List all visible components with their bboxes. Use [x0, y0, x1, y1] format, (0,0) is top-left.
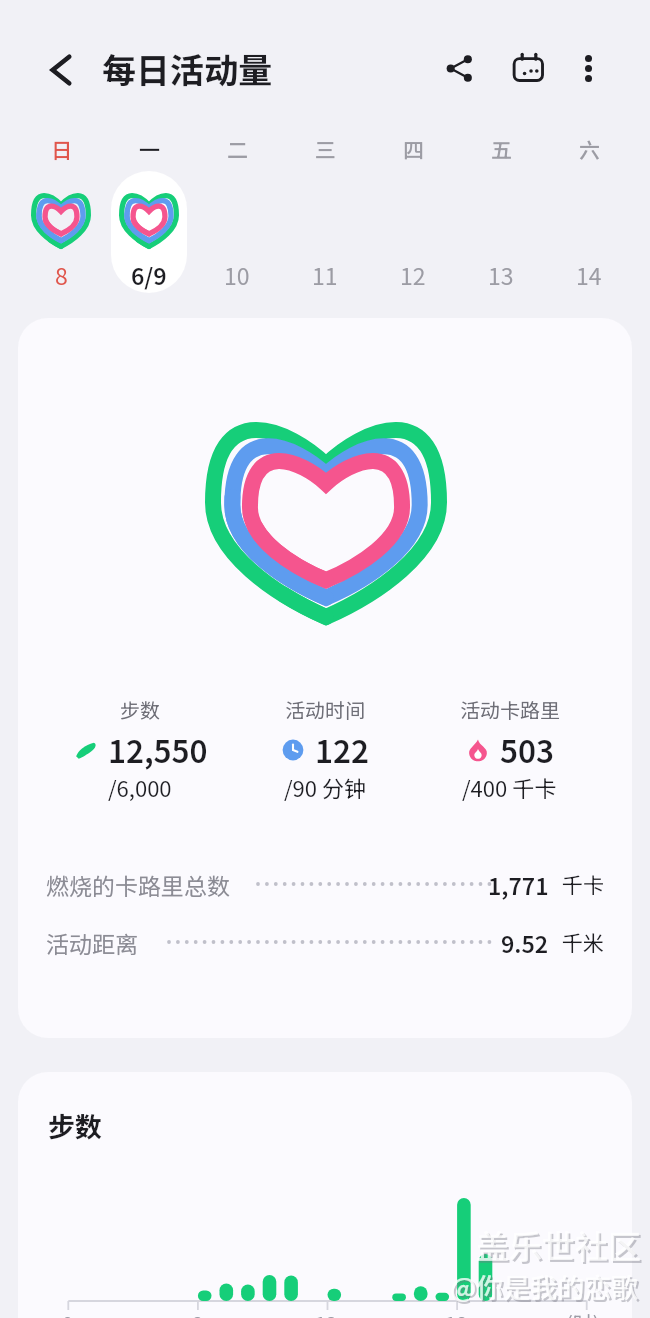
button[interactable]: 步数	[18, 1072, 632, 1318]
button[interactable]: 活动卡路里	[417, 684, 602, 794]
button[interactable]: 燃烧的卡路里总数	[18, 864, 632, 904]
staticText: 千米	[562, 927, 604, 957]
staticText: @你是我的恋歌	[450, 1267, 639, 1306]
button[interactable]: 活动时间	[232, 684, 417, 794]
button[interactable]	[287, 171, 363, 293]
button[interactable]: Calendar	[500, 40, 557, 97]
button[interactable]: More options	[560, 40, 617, 97]
staticText: 122	[315, 727, 369, 772]
staticText: 13	[488, 258, 514, 291]
button[interactable]	[111, 171, 187, 293]
button[interactable]: 步数	[18, 318, 632, 1038]
staticText: 活动时间	[285, 695, 365, 724]
button[interactable]: 活动距离	[18, 922, 632, 962]
staticText: 12	[400, 258, 426, 291]
button[interactable]: Share	[430, 40, 487, 97]
staticText: /400 千卡	[462, 771, 557, 803]
staticText: (时)	[566, 1308, 600, 1318]
button[interactable]	[375, 171, 451, 293]
staticText: /6,000	[108, 771, 172, 803]
staticText: 盖乐世社区	[478, 1223, 643, 1271]
staticText: 14	[576, 258, 602, 291]
staticText: @你是我的恋歌	[452, 1269, 641, 1308]
button[interactable]: Back	[31, 41, 89, 99]
staticText: 四	[403, 134, 424, 164]
staticText: 二	[227, 134, 248, 164]
staticText: 六	[579, 134, 600, 164]
staticText: 盖乐世社区	[476, 1221, 641, 1269]
button[interactable]	[23, 171, 99, 293]
staticText: 五	[491, 134, 512, 164]
staticText: 503	[500, 727, 554, 772]
staticText: 10	[224, 258, 250, 291]
staticText: 活动距离	[46, 926, 138, 959]
button[interactable]	[463, 171, 539, 293]
staticText: 三	[315, 134, 336, 164]
staticText: 6	[191, 1308, 203, 1318]
staticText: 步数	[48, 1106, 102, 1145]
staticText: 18	[445, 1308, 468, 1318]
staticText: 日	[51, 134, 72, 164]
staticText: /90 分钟	[284, 771, 366, 803]
staticText: 每日活动量	[102, 44, 272, 93]
button[interactable]: 步数	[48, 684, 232, 794]
staticText: 活动卡路里	[460, 695, 560, 724]
staticText: 步数	[120, 695, 160, 724]
button[interactable]	[199, 171, 275, 293]
staticText: 11	[312, 258, 338, 291]
staticText: 12,550	[108, 727, 208, 772]
button[interactable]	[551, 171, 627, 293]
staticText: 燃烧的卡路里总数	[46, 868, 230, 901]
staticText: 0	[62, 1308, 74, 1318]
staticText: 12	[315, 1308, 338, 1318]
staticText: 一	[139, 134, 160, 164]
staticText: 8	[55, 258, 68, 291]
staticText: 6/9	[131, 258, 167, 291]
staticText: 1,771	[488, 868, 549, 901]
staticText: 9.52	[501, 926, 549, 959]
staticText: 千卡	[562, 869, 604, 899]
